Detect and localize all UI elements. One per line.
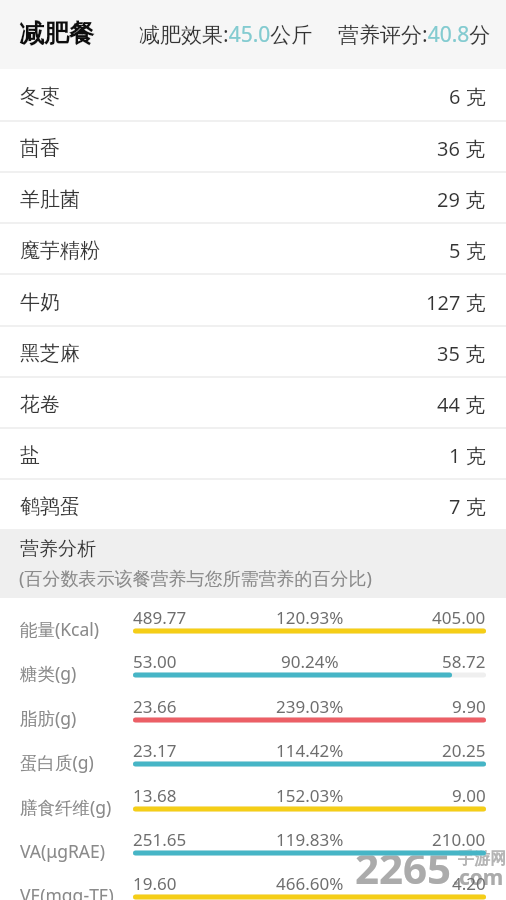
staticText: 58.72: [442, 650, 486, 672]
button[interactable]: 鹌鹑蛋: [0, 480, 506, 531]
staticText: 120.93%: [276, 606, 344, 628]
staticText: 9.90: [452, 695, 486, 717]
staticText: 魔芋精粉: [20, 238, 100, 263]
staticText: 2265: [355, 839, 452, 896]
staticText: 茴香: [20, 136, 60, 161]
staticText: 119.83%: [276, 828, 344, 850]
staticText: 冬枣: [20, 84, 60, 109]
staticText: 251.65: [133, 828, 187, 850]
staticText: 127 克: [426, 289, 486, 316]
staticText: 7 克: [449, 493, 486, 520]
staticText: 黑芝麻: [20, 341, 80, 366]
button[interactable]: 花卷: [0, 378, 506, 429]
staticText: 20.25: [442, 739, 486, 761]
staticText: 466.60%: [276, 872, 344, 894]
staticText: 营养分析: [20, 537, 96, 561]
staticText: 23.66: [133, 695, 177, 717]
staticText: 盐: [20, 443, 40, 468]
staticText: 糖类(g): [20, 661, 77, 685]
staticText: 4.20: [452, 872, 486, 894]
staticText: 鹌鹑蛋: [20, 494, 80, 519]
staticText: 花卷: [20, 392, 60, 417]
button[interactable]: 冬枣: [0, 69, 506, 122]
staticText: 13.68: [133, 784, 177, 806]
staticText: 19.60: [133, 872, 177, 894]
staticText: 脂肪(g): [20, 706, 77, 730]
button[interactable]: 魔芋精粉: [0, 224, 506, 275]
staticText: 能量(Kcal): [20, 617, 100, 641]
button[interactable]: 黑芝麻: [0, 327, 506, 378]
staticText: 90.24%: [281, 650, 339, 672]
staticText: 减肥效果:45.0公斤: [139, 20, 313, 49]
staticText: 239.03%: [276, 695, 344, 717]
button[interactable]: 羊肚菌: [0, 173, 506, 224]
staticText: 23.17: [133, 739, 177, 761]
staticText: 152.03%: [276, 784, 344, 806]
staticText: 9.00: [452, 784, 486, 806]
staticText: 44 克: [437, 391, 486, 418]
staticText: VE(mgα-TE): [20, 883, 114, 900]
staticText: 405.00: [432, 606, 486, 628]
staticText: VA(μgRAE): [20, 839, 105, 863]
staticText: 5 克: [449, 237, 486, 264]
staticText: (百分数表示该餐营养与您所需营养的百分比): [19, 566, 372, 591]
staticText: 53.00: [133, 650, 177, 672]
staticText: 蛋白质(g): [20, 750, 94, 774]
staticText: 营养评分:40.8分: [338, 20, 491, 49]
staticText: .com: [453, 863, 504, 892]
staticText: 手游网: [458, 849, 506, 869]
staticText: 6 克: [449, 83, 486, 110]
staticText: 29 克: [437, 186, 486, 213]
button[interactable]: 茴香: [0, 122, 506, 173]
staticText: 35 克: [437, 340, 486, 367]
staticText: 489.77: [133, 606, 187, 628]
staticText: 减肥餐: [19, 18, 94, 49]
staticText: 36 克: [437, 135, 486, 162]
button[interactable]: 盐: [0, 429, 506, 480]
staticText: 牛奶: [20, 290, 60, 315]
staticText: 膳食纤维(g): [20, 795, 112, 819]
staticText: 1 克: [449, 442, 486, 469]
staticText: 210.00: [432, 828, 486, 850]
button[interactable]: 牛奶: [0, 275, 506, 327]
staticText: 羊肚菌: [20, 187, 80, 212]
staticText: 114.42%: [276, 739, 344, 761]
